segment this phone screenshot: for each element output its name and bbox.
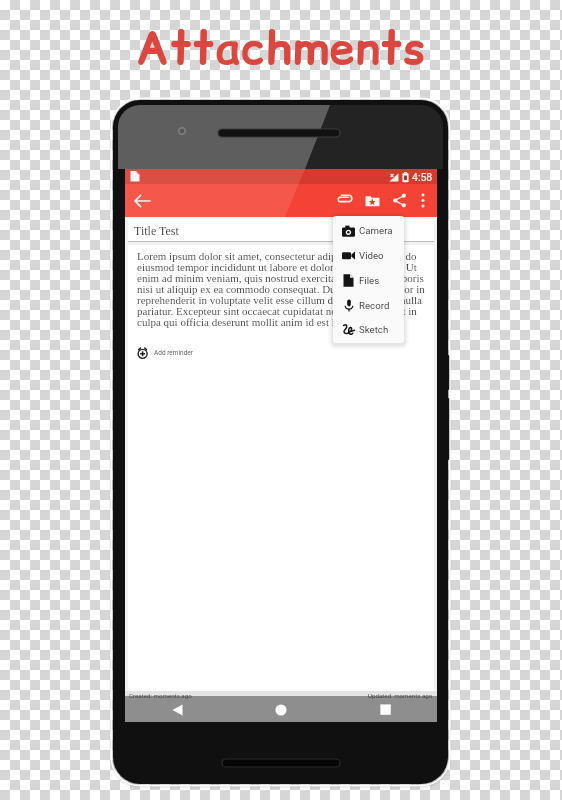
button[interactable]: Lorem ipsum dolor sit amet, consectetur … <box>128 245 434 717</box>
staticText: Attachments <box>136 17 427 80</box>
button[interactable]: Back <box>126 184 158 217</box>
staticText: 4:58 <box>412 171 433 183</box>
staticText: Video <box>359 250 384 261</box>
button[interactable]: Files <box>333 268 404 293</box>
button[interactable]: Sketch <box>333 318 404 341</box>
button[interactable]: Back <box>125 703 229 716</box>
button[interactable]: Add reminder <box>135 345 195 361</box>
button[interactable]: Share <box>386 184 412 217</box>
staticText: Created: moments ago <box>129 692 192 699</box>
staticText: Updated: moments ago <box>368 692 433 699</box>
staticText: Files <box>359 275 380 286</box>
button[interactable]: Home <box>229 703 333 716</box>
button[interactable]: Record <box>333 293 404 318</box>
button[interactable]: Move to folder <box>359 184 385 217</box>
staticText: Record <box>359 300 390 311</box>
staticText: Add reminder <box>154 349 193 357</box>
button[interactable]: Video <box>333 243 404 268</box>
staticText: Title Test <box>134 224 179 237</box>
button[interactable]: Attach file <box>331 184 357 217</box>
staticText: Lorem ipsum dolor sit amet, consectetur … <box>137 250 433 328</box>
staticText: Sketch <box>359 324 389 335</box>
button[interactable]: More options <box>410 184 436 217</box>
staticText: Camera <box>359 225 393 236</box>
button[interactable]: Camera <box>333 218 404 243</box>
button[interactable]: Recent apps <box>333 703 437 716</box>
button[interactable]: Title Test <box>128 219 434 241</box>
